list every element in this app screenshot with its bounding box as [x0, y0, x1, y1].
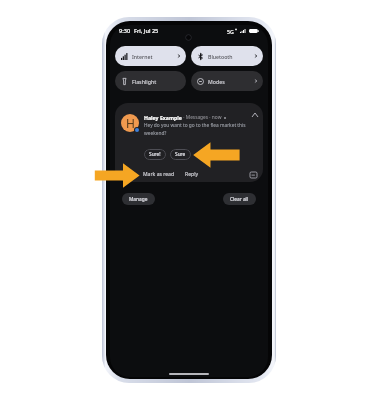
button[interactable]: Reply	[185, 169, 199, 180]
button[interactable]: Modes	[191, 71, 263, 91]
staticText: Hey do you want to go to the flea market…	[144, 122, 248, 136]
staticText: Clear all	[230, 196, 249, 203]
button[interactable]: Collapse notification	[249, 109, 260, 120]
button[interactable]: Bluetooth	[191, 46, 263, 66]
button[interactable]: Sure!	[144, 149, 166, 160]
button[interactable]: Notification settings	[248, 170, 258, 180]
staticText: · Messages · now	[182, 114, 222, 121]
staticText: Manage	[129, 196, 148, 203]
staticText: 5G	[227, 28, 234, 35]
button[interactable]: H	[115, 103, 263, 182]
staticText: Sure!	[149, 151, 161, 158]
button[interactable]: Sure	[170, 149, 191, 160]
staticText: Modes	[208, 78, 225, 85]
staticText: Sure	[175, 151, 186, 158]
staticText: Reply	[185, 171, 199, 178]
staticText: Internet	[132, 53, 153, 60]
button[interactable]: Mark as read	[143, 169, 175, 180]
button[interactable]: Manage	[122, 193, 155, 205]
staticText: Haley Example	[144, 114, 182, 121]
button[interactable]: Clear all	[223, 193, 256, 205]
staticText: H	[126, 115, 135, 131]
staticText: Mark as read	[143, 171, 175, 178]
staticText: Bluetooth	[208, 53, 233, 60]
button[interactable]: Flashlight	[115, 71, 186, 91]
staticText: Fri, Jul 25	[134, 27, 159, 35]
staticText: Flashlight	[132, 78, 157, 85]
staticText: 9:30	[119, 27, 131, 35]
button[interactable]: Internet	[115, 46, 186, 66]
